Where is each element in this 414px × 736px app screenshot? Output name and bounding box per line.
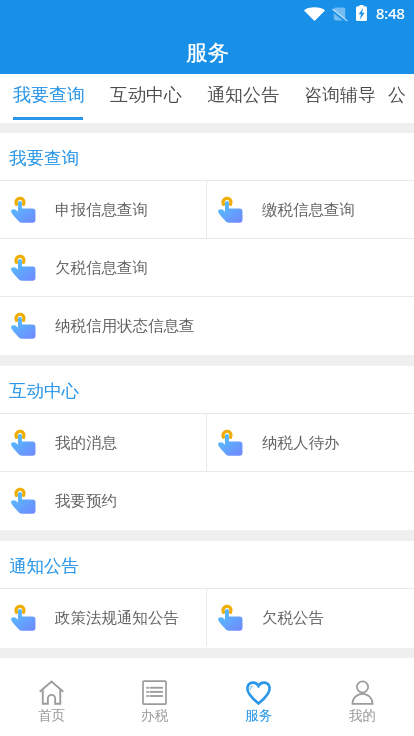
button[interactable]: 我的 bbox=[310, 658, 414, 736]
staticText: 欠税公告 bbox=[262, 608, 324, 628]
button[interactable]: 我的消息 bbox=[0, 414, 206, 471]
staticText: 咨询辅导 bbox=[304, 84, 376, 107]
staticText: 我要查询 bbox=[9, 147, 79, 169]
staticText: 通知公告 bbox=[207, 84, 279, 107]
button[interactable]: 首页 bbox=[0, 658, 103, 736]
staticText: 8:48 bbox=[376, 3, 405, 23]
button[interactable]: 我要预约 bbox=[0, 472, 207, 529]
button[interactable]: 通知公告 bbox=[194, 74, 291, 123]
staticText: 通知公告 bbox=[9, 555, 79, 577]
staticText: 纳税信用状态信息查询 bbox=[55, 316, 207, 336]
staticText: 我的消息 bbox=[55, 433, 117, 453]
staticText: 互动中心 bbox=[9, 380, 79, 402]
button[interactable]: 公众参与 bbox=[388, 74, 414, 123]
button[interactable]: 我要查询 bbox=[0, 74, 97, 123]
button[interactable]: 咨询辅导 bbox=[291, 74, 388, 123]
staticText: 办税 bbox=[141, 707, 168, 724]
button[interactable]: 缴税信息查询 bbox=[207, 181, 414, 238]
button[interactable]: 互动中心 bbox=[97, 74, 194, 123]
staticText: 欠税信息查询 bbox=[55, 258, 148, 278]
staticText: 申报信息查询 bbox=[55, 200, 148, 220]
staticText: 服务 bbox=[245, 707, 272, 724]
staticText: 互动中心 bbox=[110, 84, 182, 107]
button[interactable]: 纳税信用状态信息查询 bbox=[0, 297, 207, 354]
staticText: 我要预约 bbox=[55, 491, 117, 511]
button[interactable]: 纳税人待办 bbox=[207, 414, 414, 471]
button[interactable]: 申报信息查询 bbox=[0, 181, 206, 238]
staticText: 我的 bbox=[349, 707, 376, 724]
staticText: 首页 bbox=[38, 707, 65, 724]
staticText: 服务 bbox=[186, 39, 229, 66]
button[interactable]: 办税 bbox=[103, 658, 206, 736]
staticText: 我要查询 bbox=[13, 84, 85, 107]
staticText: 纳税人待办 bbox=[262, 433, 340, 453]
staticText: 政策法规通知公告 bbox=[55, 608, 179, 628]
button[interactable]: 服务 bbox=[206, 658, 310, 736]
staticText: 公众参与 bbox=[388, 84, 414, 107]
staticText: 缴税信息查询 bbox=[262, 200, 355, 220]
button[interactable]: 政策法规通知公告 bbox=[0, 589, 206, 646]
button[interactable]: 欠税信息查询 bbox=[0, 239, 207, 296]
button[interactable]: 欠税公告 bbox=[207, 589, 414, 646]
